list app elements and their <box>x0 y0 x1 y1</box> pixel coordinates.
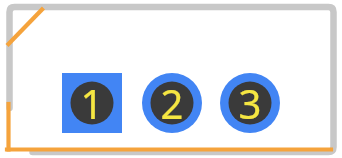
button[interactable]: PCB footprint preview, three pads <box>0 0 342 158</box>
